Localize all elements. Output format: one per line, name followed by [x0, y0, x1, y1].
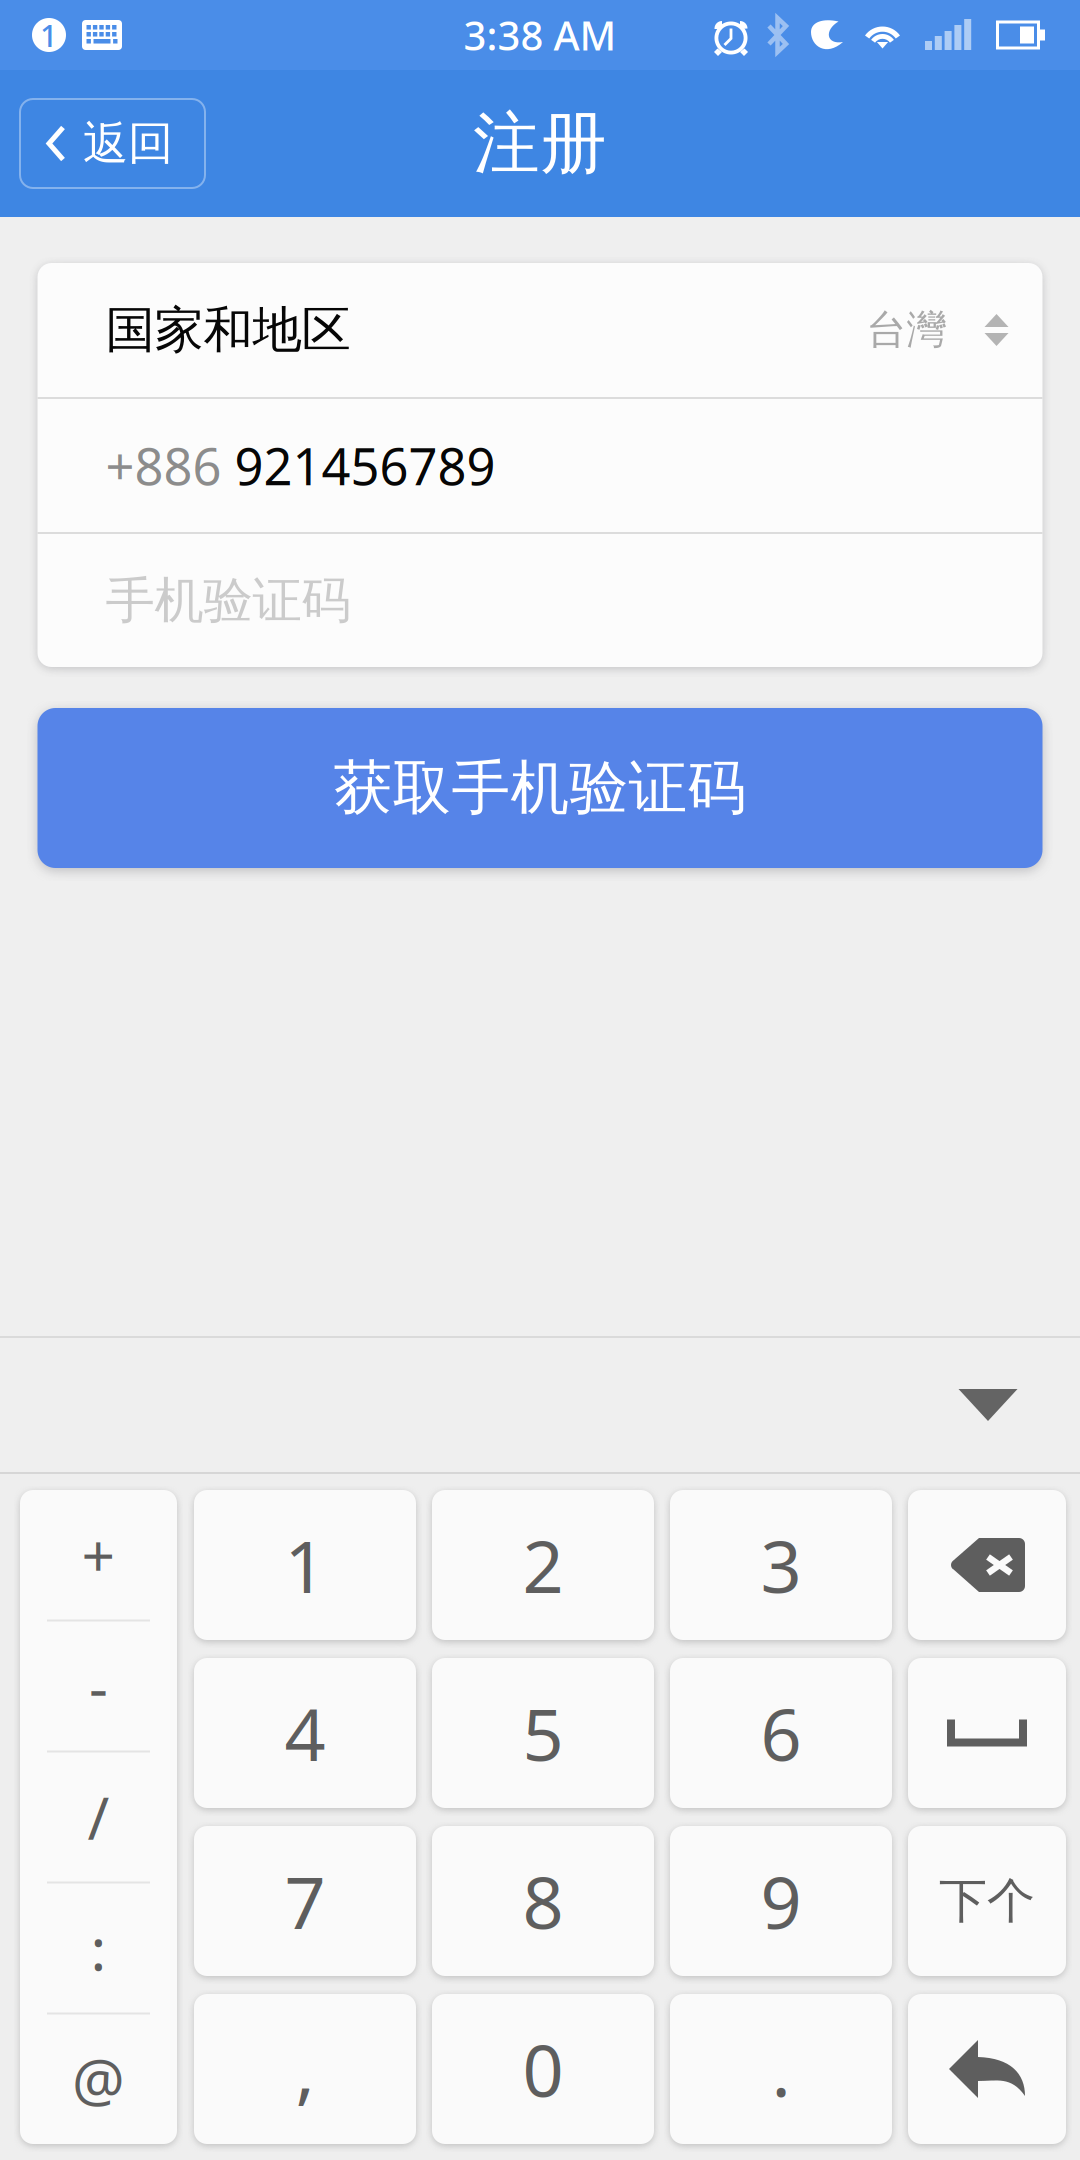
- staticText: 6: [760, 1685, 801, 1781]
- button[interactable]: Hide keyboard: [928, 1338, 1048, 1472]
- button[interactable]: 5: [432, 1658, 654, 1808]
- staticText: 8: [522, 1853, 563, 1949]
- button[interactable]: 1: [194, 1490, 416, 1640]
- button[interactable]: +: [20, 1490, 177, 1619]
- staticText: 2: [522, 1517, 563, 1613]
- staticText: +886: [105, 432, 221, 499]
- button[interactable]: ,: [194, 1994, 416, 2144]
- button[interactable]: 0: [432, 1994, 654, 2144]
- staticText: 3:38 AM: [463, 8, 616, 61]
- staticText: 3: [760, 1517, 801, 1613]
- staticText: 手机验证码: [105, 570, 350, 631]
- button[interactable]: 2: [432, 1490, 654, 1640]
- staticText: ,: [295, 2021, 314, 2117]
- staticText: .: [771, 2021, 790, 2117]
- staticText: :: [90, 1909, 106, 1987]
- button[interactable]: 国家和地区: [37, 263, 1042, 397]
- staticText: 7: [284, 1853, 325, 1949]
- staticText: 1: [284, 1517, 325, 1613]
- staticText: -: [89, 1647, 108, 1725]
- staticText: 4: [284, 1685, 325, 1781]
- staticText: 获取手机验证码: [333, 752, 746, 824]
- button[interactable]: :: [20, 1883, 177, 2012]
- staticText: /: [87, 1778, 109, 1856]
- staticText: 台灣: [866, 305, 946, 354]
- button[interactable]: @: [20, 2014, 177, 2143]
- button[interactable]: 4: [194, 1658, 416, 1808]
- button[interactable]: Return: [908, 1994, 1066, 2144]
- staticText: 1: [40, 15, 58, 55]
- button[interactable]: .: [670, 1994, 892, 2144]
- staticText: 返回: [83, 116, 173, 171]
- button[interactable]: Delete: [908, 1490, 1066, 1640]
- button[interactable]: 获取手机验证码: [37, 708, 1042, 868]
- button[interactable]: 6: [670, 1658, 892, 1808]
- staticText: 0: [522, 2021, 563, 2117]
- staticText: 下个: [939, 1871, 1035, 1930]
- button[interactable]: 8: [432, 1826, 654, 1976]
- staticText: 921456789: [221, 432, 495, 499]
- staticText: 注册: [473, 103, 607, 184]
- button[interactable]: -: [20, 1621, 177, 1750]
- button[interactable]: 7: [194, 1826, 416, 1976]
- button[interactable]: [908, 1826, 1066, 1976]
- staticText: 5: [522, 1685, 563, 1781]
- button[interactable]: Space: [908, 1658, 1066, 1808]
- button[interactable]: 9: [670, 1826, 892, 1976]
- button[interactable]: 3: [670, 1490, 892, 1640]
- staticText: @: [72, 2040, 125, 2118]
- staticText: 国家和地区: [105, 300, 350, 360]
- button[interactable]: /: [20, 1752, 177, 1881]
- button[interactable]: 返回: [20, 99, 205, 188]
- staticText: 9: [760, 1853, 801, 1949]
- staticText: +: [81, 1516, 115, 1594]
